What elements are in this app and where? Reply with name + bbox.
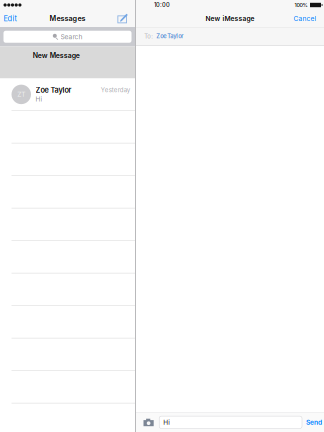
staticText: 10:00 [154, 1, 170, 8]
staticText: Zoe Taylor [156, 33, 183, 40]
staticText: Search [61, 33, 83, 41]
button[interactable]: Cancel [289, 10, 324, 27]
button[interactable]: Zoe Taylor [153, 32, 185, 41]
staticText: Yesterday [101, 86, 130, 94]
button[interactable]: Camera [136, 413, 159, 432]
staticText: To: [144, 33, 153, 40]
staticText: ZT [17, 90, 25, 98]
staticText: 100% [294, 2, 307, 8]
staticText: Send [306, 418, 322, 426]
staticText: Hi [36, 95, 43, 103]
button[interactable]: ZT [0, 78, 135, 111]
staticText: Messages [49, 14, 85, 23]
button[interactable]: New Message [0, 46, 135, 78]
staticText: New iMessage [205, 14, 254, 23]
button[interactable]: New Message [113, 10, 135, 27]
button[interactable]: Edit [0, 10, 20, 27]
staticText: Zoe Taylor [36, 86, 72, 94]
staticText: Edit [3, 14, 16, 23]
staticText: Hi [163, 418, 170, 426]
button[interactable]: Send [302, 413, 324, 432]
staticText: Cancel [293, 14, 316, 23]
staticText: New Message [33, 51, 80, 60]
